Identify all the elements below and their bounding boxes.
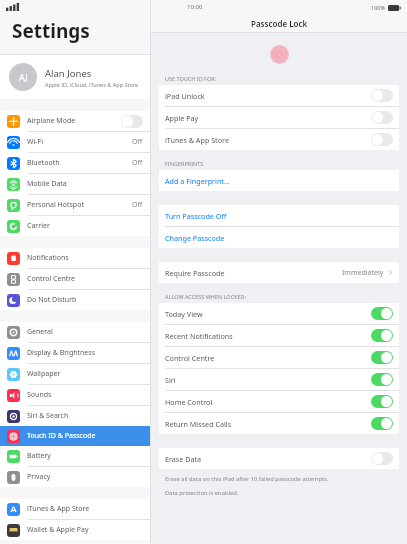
- button[interactable]: On: [371, 417, 393, 430]
- staticText: Privacy: [27, 472, 143, 482]
- staticText: Siri & Search: [27, 411, 143, 421]
- button[interactable]: Wallet & Apple Pay: [0, 520, 150, 540]
- staticText: iTunes & App Store: [165, 135, 371, 145]
- staticText: Touch ID & Passcode: [27, 431, 143, 441]
- staticText: Turn Passcode Off: [165, 211, 227, 221]
- staticText: 100%: [371, 4, 386, 11]
- staticText: Sounds: [27, 390, 143, 400]
- staticText: Off: [132, 200, 143, 210]
- button[interactable]: Add a Fingerprint...: [159, 170, 399, 191]
- button[interactable]: Change Passcode: [159, 227, 399, 248]
- button[interactable]: Control Centre: [0, 269, 150, 289]
- staticText: Off: [132, 137, 143, 147]
- staticText: Apple ID, iCloud, iTunes & App Store: [45, 81, 139, 88]
- staticText: FINGERPRINTS: [165, 160, 204, 167]
- staticText: Siri: [165, 375, 371, 385]
- staticText: Add a Fingerprint...: [165, 176, 230, 186]
- button[interactable]: iTunes & App Store: [0, 499, 150, 519]
- staticText: Recent Notifications: [165, 331, 371, 341]
- staticText: iTunes & App Store: [27, 504, 143, 514]
- button[interactable]: On: [371, 351, 393, 364]
- button[interactable]: Require Passcode: [159, 262, 399, 283]
- staticText: Settings: [12, 18, 90, 44]
- staticText: Wi-Fi: [27, 137, 132, 147]
- button[interactable]: Airplane Mode: [0, 111, 150, 131]
- button[interactable]: Privacy: [0, 467, 150, 487]
- staticText: Require Passcode: [165, 268, 342, 278]
- button[interactable]: Carrier: [0, 216, 150, 236]
- button[interactable]: Mobile Data: [0, 174, 150, 194]
- staticText: Data protection is enabled.: [165, 489, 239, 497]
- button[interactable]: On: [371, 329, 393, 342]
- staticText: 10:00: [187, 3, 203, 11]
- staticText: Off: [132, 158, 143, 168]
- button[interactable]: Today View: [159, 303, 399, 324]
- staticText: Immediately: [342, 268, 384, 278]
- staticText: AJ: [19, 71, 28, 83]
- staticText: Control Centre: [27, 274, 143, 284]
- button[interactable]: Off: [371, 89, 393, 102]
- button[interactable]: Off: [371, 133, 393, 146]
- button[interactable]: Wallpaper: [0, 364, 150, 384]
- staticText: ALLOW ACCESS WHEN LOCKED:: [165, 293, 247, 300]
- staticText: Apple Pay: [165, 113, 371, 123]
- staticText: Erase all data on this iPad after 10 fai…: [165, 475, 329, 483]
- button[interactable]: Notifications: [0, 248, 150, 268]
- staticText: Battery: [27, 451, 143, 461]
- button[interactable]: Do Not Disturb: [0, 290, 150, 310]
- staticText: Return Missed Calls: [165, 419, 371, 429]
- button[interactable]: Wi-Fi: [0, 132, 150, 152]
- button[interactable]: On: [371, 395, 393, 408]
- button[interactable]: Display & Brightness: [0, 343, 150, 363]
- button[interactable]: iPad Unlock: [159, 85, 399, 106]
- staticText: Carrier: [27, 221, 143, 231]
- staticText: Passcode Lock: [251, 18, 308, 29]
- staticText: Do Not Disturb: [27, 295, 143, 305]
- button[interactable]: Turn Passcode Off: [159, 205, 399, 226]
- button[interactable]: Off: [371, 452, 393, 465]
- button[interactable]: iTunes & App Store: [159, 129, 399, 150]
- button[interactable]: Personal Hotspot: [0, 195, 150, 215]
- button[interactable]: General: [0, 322, 150, 342]
- staticText: Personal Hotspot: [27, 200, 132, 210]
- button[interactable]: Home Control: [159, 391, 399, 412]
- staticText: Wallet & Apple Pay: [27, 525, 143, 535]
- button[interactable]: On: [371, 373, 393, 386]
- button[interactable]: Bluetooth: [0, 153, 150, 173]
- button[interactable]: Siri & Search: [0, 406, 150, 426]
- staticText: Wallpaper: [27, 369, 143, 379]
- staticText: Airplane Mode: [27, 116, 121, 126]
- staticText: Display & Brightness: [27, 348, 143, 358]
- staticText: Mobile Data: [27, 179, 143, 189]
- button[interactable]: Return Missed Calls: [159, 413, 399, 434]
- staticText: USE TOUCH ID FOR:: [165, 75, 217, 82]
- button[interactable]: Off: [371, 111, 393, 124]
- staticText: Change Passcode: [165, 233, 225, 243]
- staticText: Home Control: [165, 397, 371, 407]
- button[interactable]: Touch ID & Passcode: [0, 426, 150, 446]
- staticText: iPad Unlock: [165, 91, 371, 101]
- staticText: Control Centre: [165, 353, 371, 363]
- staticText: General: [27, 327, 143, 337]
- button[interactable]: Battery: [0, 446, 150, 466]
- staticText: Bluetooth: [27, 158, 132, 168]
- staticText: Today View: [165, 309, 371, 319]
- button[interactable]: Erase Data: [159, 448, 399, 469]
- staticText: Notifications: [27, 253, 143, 263]
- button[interactable]: AJ: [0, 55, 150, 99]
- button[interactable]: On: [371, 307, 393, 320]
- button[interactable]: Recent Notifications: [159, 325, 399, 346]
- button[interactable]: Siri: [159, 369, 399, 390]
- button[interactable]: Apple Pay: [159, 107, 399, 128]
- button[interactable]: Sounds: [0, 385, 150, 405]
- staticText: Alan Jones: [45, 67, 92, 80]
- staticText: Erase Data: [165, 454, 371, 464]
- button[interactable]: Control Centre: [159, 347, 399, 368]
